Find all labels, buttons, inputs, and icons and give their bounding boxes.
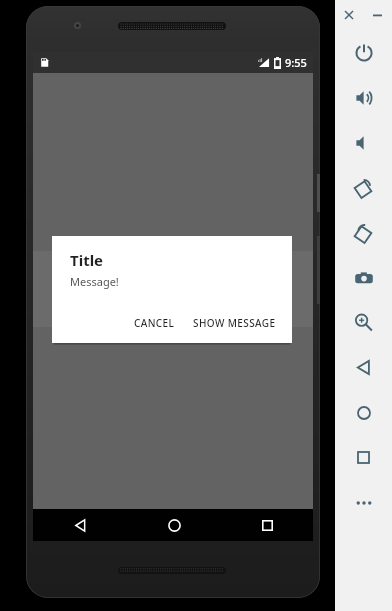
staticText: CANCEL: [134, 316, 175, 330]
button[interactable]: Back: [64, 509, 96, 541]
button[interactable]: Home: [335, 390, 392, 435]
button[interactable]: Back: [335, 345, 392, 390]
staticText: Message!: [70, 274, 119, 289]
button[interactable]: Home: [158, 509, 190, 541]
button[interactable]: SHOW MESSAGE: [187, 310, 282, 336]
button[interactable]: Power: [335, 30, 392, 75]
button[interactable]: More: [335, 480, 392, 525]
button[interactable]: Close: [335, 0, 363, 30]
staticText: 9:55: [285, 55, 307, 70]
button[interactable]: Volume up: [335, 75, 392, 120]
staticText: Title: [70, 250, 104, 270]
button[interactable]: Screenshot: [335, 255, 392, 300]
staticText: SHOW MESSAGE: [193, 316, 276, 330]
button[interactable]: Recent apps: [251, 509, 283, 541]
button[interactable]: Minimize: [363, 0, 392, 30]
button[interactable]: Zoom: [335, 300, 392, 345]
button[interactable]: Volume down: [335, 120, 392, 165]
button[interactable]: Rotate right: [335, 210, 392, 255]
button[interactable]: CANCEL: [128, 310, 181, 336]
button[interactable]: Rotate left: [335, 165, 392, 210]
button[interactable]: Overview: [335, 435, 392, 480]
